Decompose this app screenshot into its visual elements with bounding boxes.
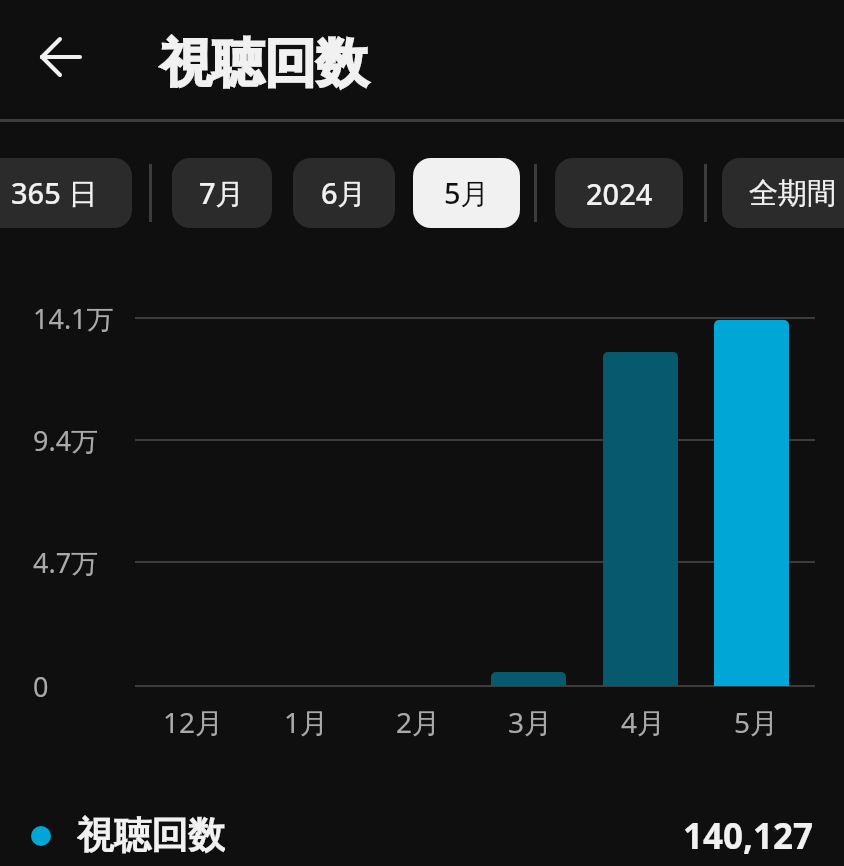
staticText: 6月 [321, 173, 367, 213]
staticText: 14.1万 [33, 300, 114, 337]
staticText: 4月 [621, 703, 666, 741]
staticText: 5月 [444, 173, 490, 213]
staticText: 12月 [163, 703, 224, 741]
staticText: 9.4万 [33, 422, 99, 459]
button[interactable]: 5月 [413, 158, 520, 228]
button[interactable]: 2024 [555, 158, 683, 228]
staticText: 4.7万 [33, 544, 99, 581]
staticText: 視聴回数 [160, 31, 368, 97]
staticText: 3月 [508, 703, 553, 741]
staticText: 視聴回数 [77, 812, 225, 858]
staticText: 1月 [284, 703, 329, 741]
button[interactable] [30, 25, 94, 89]
button[interactable]: 7月 [172, 158, 272, 228]
staticText: 365 日 [11, 173, 98, 213]
button[interactable]: 365 日 [0, 158, 132, 228]
button[interactable]: 全期間 [722, 158, 844, 228]
staticText: 7月 [199, 173, 245, 213]
button[interactable]: 6月 [293, 158, 395, 228]
staticText: 0 [33, 668, 49, 705]
staticText: 140,127 [683, 812, 814, 858]
staticText: 2024 [586, 174, 653, 213]
staticText: 5月 [734, 703, 779, 741]
staticText: 2月 [396, 703, 441, 741]
staticText: 全期間 [749, 175, 836, 212]
